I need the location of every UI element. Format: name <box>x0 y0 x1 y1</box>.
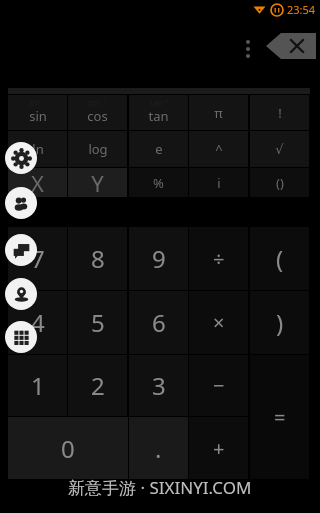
staticText: 3 <box>152 369 166 402</box>
button[interactable]: 3 <box>129 355 188 416</box>
button[interactable]: ln <box>8 131 67 167</box>
staticText: log <box>88 140 108 158</box>
staticText: ! <box>278 104 282 122</box>
staticText: 23:54 <box>287 2 316 17</box>
button[interactable]: i <box>189 168 248 197</box>
staticText: ÷ <box>213 245 225 272</box>
button[interactable]: % <box>129 168 188 197</box>
staticText: 新意手游 · SIXINYI.COM <box>68 476 252 499</box>
staticText: 4 <box>31 306 45 339</box>
button[interactable]: √ <box>250 131 309 167</box>
button[interactable]: More options <box>236 36 260 62</box>
staticText: = <box>274 404 286 431</box>
button[interactable]: × <box>189 291 248 354</box>
button[interactable]: Apps <box>5 321 37 353</box>
staticText: 7 <box>31 242 45 275</box>
button[interactable]: Contacts <box>5 187 37 219</box>
button[interactable]: log <box>68 131 127 167</box>
button[interactable]: () <box>250 168 309 197</box>
staticText: X <box>31 168 44 197</box>
button[interactable]: ) <box>250 291 309 354</box>
button[interactable]: π <box>189 95 248 130</box>
button[interactable]: X <box>8 168 67 197</box>
button[interactable]: 2 <box>68 355 127 416</box>
button[interactable]: ! <box>250 95 309 130</box>
staticText: 2 <box>91 369 105 402</box>
staticText: () <box>276 174 284 192</box>
staticText: ln <box>32 140 44 158</box>
staticText: sin <box>29 107 47 125</box>
staticText: 5 <box>91 306 105 339</box>
staticText: 8 <box>91 242 105 275</box>
button[interactable]: Delete <box>266 33 316 59</box>
staticText: √ <box>275 142 284 157</box>
staticText: ) <box>276 306 284 339</box>
button[interactable]: Settings <box>5 142 37 174</box>
button[interactable]: 4 <box>8 291 67 354</box>
staticText: × <box>213 309 225 336</box>
button[interactable]: ^ <box>189 131 248 167</box>
button[interactable]: − <box>189 355 248 416</box>
staticText: π <box>214 104 223 122</box>
staticText: . <box>155 432 162 465</box>
button[interactable]: 9 <box>129 227 188 290</box>
button[interactable]: cos⁻¹ <box>68 95 127 130</box>
staticText: e <box>155 140 163 158</box>
staticText: i <box>217 174 221 192</box>
button[interactable]: . <box>129 417 188 479</box>
button[interactable]: 8 <box>68 227 127 290</box>
button[interactable]: Messages <box>5 234 37 266</box>
button[interactable]: 5 <box>68 291 127 354</box>
button[interactable]: 7 <box>8 227 67 290</box>
staticText: tan <box>148 107 169 125</box>
staticText: − <box>213 372 225 399</box>
staticText: 6 <box>152 306 166 339</box>
staticText: Y <box>91 168 104 197</box>
staticText: ^ <box>215 140 223 158</box>
button[interactable]: 0 <box>8 417 128 479</box>
staticText: cos <box>87 107 108 125</box>
staticText: 1 <box>31 369 45 402</box>
button[interactable]: 1 <box>8 355 67 416</box>
button[interactable]: = <box>250 355 309 479</box>
button[interactable]: 6 <box>129 291 188 354</box>
button[interactable]: e <box>129 131 188 167</box>
button[interactable]: sin⁻¹ <box>8 95 67 130</box>
button[interactable]: ( <box>250 227 309 290</box>
button[interactable]: Y <box>68 168 127 197</box>
button[interactable]: + <box>189 417 248 479</box>
button[interactable]: ÷ <box>189 227 248 290</box>
staticText: 0 <box>61 432 75 465</box>
button[interactable]: tan⁻¹ <box>129 95 188 130</box>
button[interactable]: Maps <box>5 278 37 310</box>
staticText: % <box>153 174 164 192</box>
staticText: 9 <box>152 242 166 275</box>
staticText: + <box>213 435 225 462</box>
staticText: ( <box>276 242 284 275</box>
